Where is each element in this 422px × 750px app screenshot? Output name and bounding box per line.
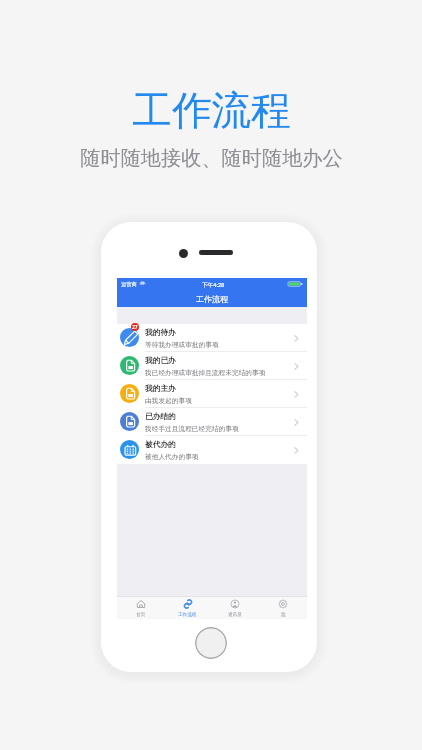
staticText: 随时随地接收、随时随地办公 — [80, 146, 343, 171]
staticText: 由我发起的事项 — [145, 397, 192, 405]
button[interactable]: 工作流程 — [164, 596, 211, 619]
staticText: 我已经办理或审批掉且流程未完结的事项 — [145, 369, 266, 377]
staticText: 工作流程 — [178, 612, 197, 618]
staticText: 已办结的 — [145, 412, 176, 422]
staticText: 27 — [132, 324, 138, 331]
button[interactable]: 首页 — [117, 596, 164, 619]
staticText: 我的主办 — [145, 384, 176, 394]
staticText: 我的待办 — [145, 328, 176, 338]
staticText: 首页 — [136, 612, 146, 618]
button[interactable]: 我 — [259, 596, 307, 619]
button[interactable]: 我的已办 — [117, 352, 307, 380]
staticText: 我 — [281, 612, 286, 618]
button[interactable]: 27 — [117, 324, 307, 352]
button[interactable]: 已办结的 — [117, 408, 307, 436]
staticText: 被他人代办的事项 — [145, 453, 199, 461]
button[interactable]: 通讯录 — [211, 596, 259, 619]
staticText: 下午4:28 — [202, 281, 225, 289]
staticText: 我经手过且流程已经完结的事项 — [145, 425, 239, 433]
staticText: 工作流程 — [196, 294, 228, 304]
staticText: 运营商 — [121, 281, 137, 288]
staticText: 通讯录 — [228, 612, 242, 618]
staticText: 工作流程 — [132, 86, 291, 136]
button[interactable]: 我的主办 — [117, 380, 307, 408]
staticText: 我的已办 — [145, 356, 176, 366]
button[interactable]: 被代办的 — [117, 436, 307, 464]
staticText: 等待我办理或审批的事项 — [145, 341, 219, 349]
staticText: 被代办的 — [145, 440, 176, 450]
